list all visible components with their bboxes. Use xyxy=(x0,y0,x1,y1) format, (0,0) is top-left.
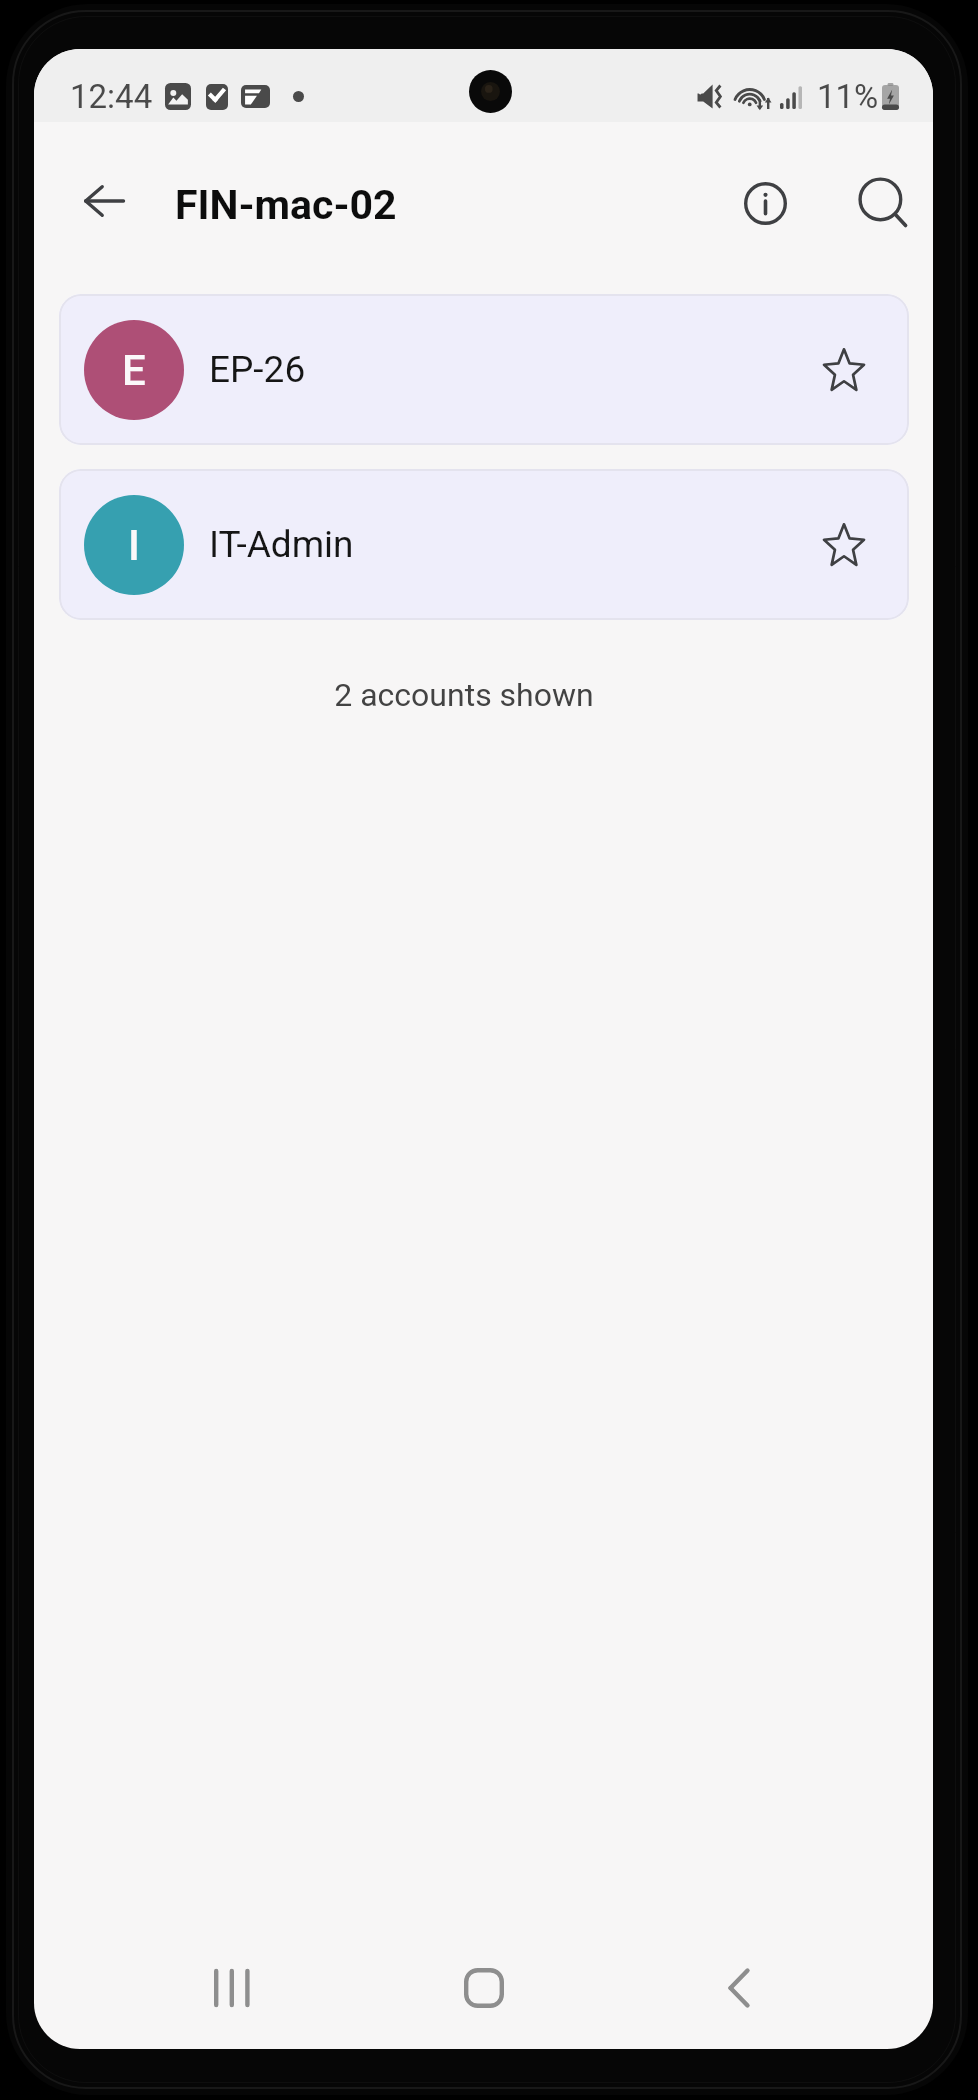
button[interactable]: Search xyxy=(846,165,926,245)
staticText: 11% xyxy=(817,77,879,116)
button[interactable]: I xyxy=(59,469,909,620)
button[interactable]: Back xyxy=(699,1948,779,2028)
staticText: 12:44 xyxy=(70,77,153,116)
button[interactable]: Back xyxy=(64,161,144,241)
staticText: IT-Admin xyxy=(209,523,354,566)
staticText: EP-26 xyxy=(209,348,306,391)
button[interactable]: E xyxy=(59,294,909,445)
button[interactable]: Info xyxy=(725,163,805,243)
staticText: FIN-mac-02 xyxy=(175,181,397,229)
button[interactable]: Recents xyxy=(192,1948,272,2028)
staticText: 2 accounts shown xyxy=(34,676,894,714)
button[interactable]: Home xyxy=(444,1948,524,2028)
staticText: I xyxy=(128,521,140,570)
staticText: E xyxy=(122,346,146,395)
button[interactable]: Favourite xyxy=(804,505,884,585)
button[interactable]: Favourite xyxy=(804,330,884,410)
